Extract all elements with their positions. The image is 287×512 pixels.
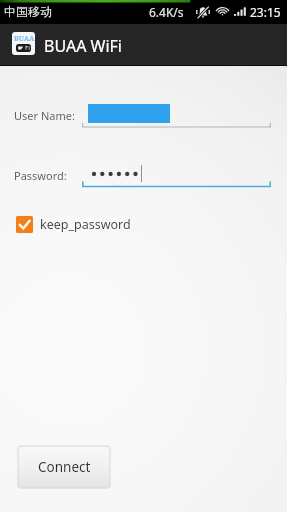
staticText: BUAA WiFi bbox=[44, 35, 122, 57]
staticText: BUAA bbox=[14, 34, 35, 44]
staticText: 23:15 bbox=[250, 4, 281, 20]
staticText: 中国移动 bbox=[4, 4, 52, 19]
button[interactable]: Connect bbox=[18, 446, 110, 488]
button[interactable]: User name input field bbox=[82, 100, 271, 128]
staticText: Connect bbox=[38, 458, 91, 476]
button[interactable]: keep_password bbox=[16, 216, 131, 233]
staticText: 6.4K/s bbox=[149, 4, 184, 20]
button[interactable]: Password input field bbox=[82, 162, 271, 188]
staticText: Password: bbox=[14, 168, 67, 183]
staticText: keep_password bbox=[40, 216, 131, 233]
staticText: User Name: bbox=[14, 108, 75, 123]
